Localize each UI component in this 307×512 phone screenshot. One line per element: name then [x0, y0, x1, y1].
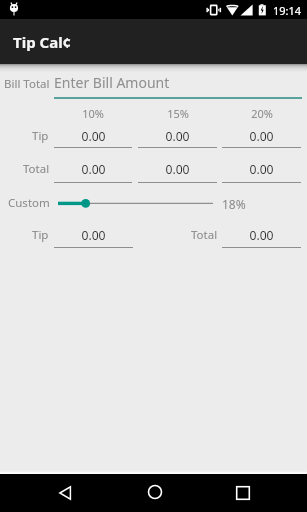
- staticText: Custom: [8, 195, 50, 211]
- staticText: 0.00: [81, 161, 106, 178]
- staticText: Tip: [32, 227, 49, 243]
- staticText: 20%: [251, 106, 273, 121]
- staticText: Tip Cal¢: [13, 32, 72, 52]
- staticText: 0.00: [81, 227, 106, 244]
- staticText: Tip: [32, 128, 49, 144]
- button[interactable]: amount: [54, 128, 132, 145]
- button[interactable]: amount: [222, 161, 301, 178]
- button[interactable]: amount: [54, 227, 133, 244]
- button[interactable]: amount: [138, 128, 217, 145]
- button[interactable]: Tip Cal¢: [0, 19, 307, 64]
- staticText: 0.00: [81, 128, 106, 145]
- staticText: 0.00: [249, 161, 274, 178]
- button[interactable]: Back: [42, 474, 87, 512]
- button[interactable]: Custom tip percent: [56, 195, 216, 212]
- staticText: 18%: [222, 196, 246, 212]
- staticText: 15%: [167, 106, 189, 121]
- staticText: 0.00: [165, 161, 190, 178]
- staticText: 19:14: [273, 3, 302, 18]
- button[interactable]: Recent apps: [220, 474, 265, 512]
- button[interactable]: amount: [222, 227, 301, 244]
- staticText: 0.00: [249, 227, 274, 244]
- staticText: 0.00: [165, 128, 190, 145]
- staticText: 10%: [82, 106, 104, 121]
- staticText: Enter Bill Amount: [54, 73, 170, 92]
- staticText: Bill Total: [4, 76, 50, 92]
- staticText: Total: [23, 161, 50, 177]
- button[interactable]: amount: [54, 161, 132, 178]
- button[interactable]: Home: [132, 474, 177, 512]
- staticText: 0.00: [249, 128, 274, 145]
- staticText: Total: [191, 227, 218, 243]
- button[interactable]: amount: [222, 128, 301, 145]
- button[interactable]: amount: [138, 161, 217, 178]
